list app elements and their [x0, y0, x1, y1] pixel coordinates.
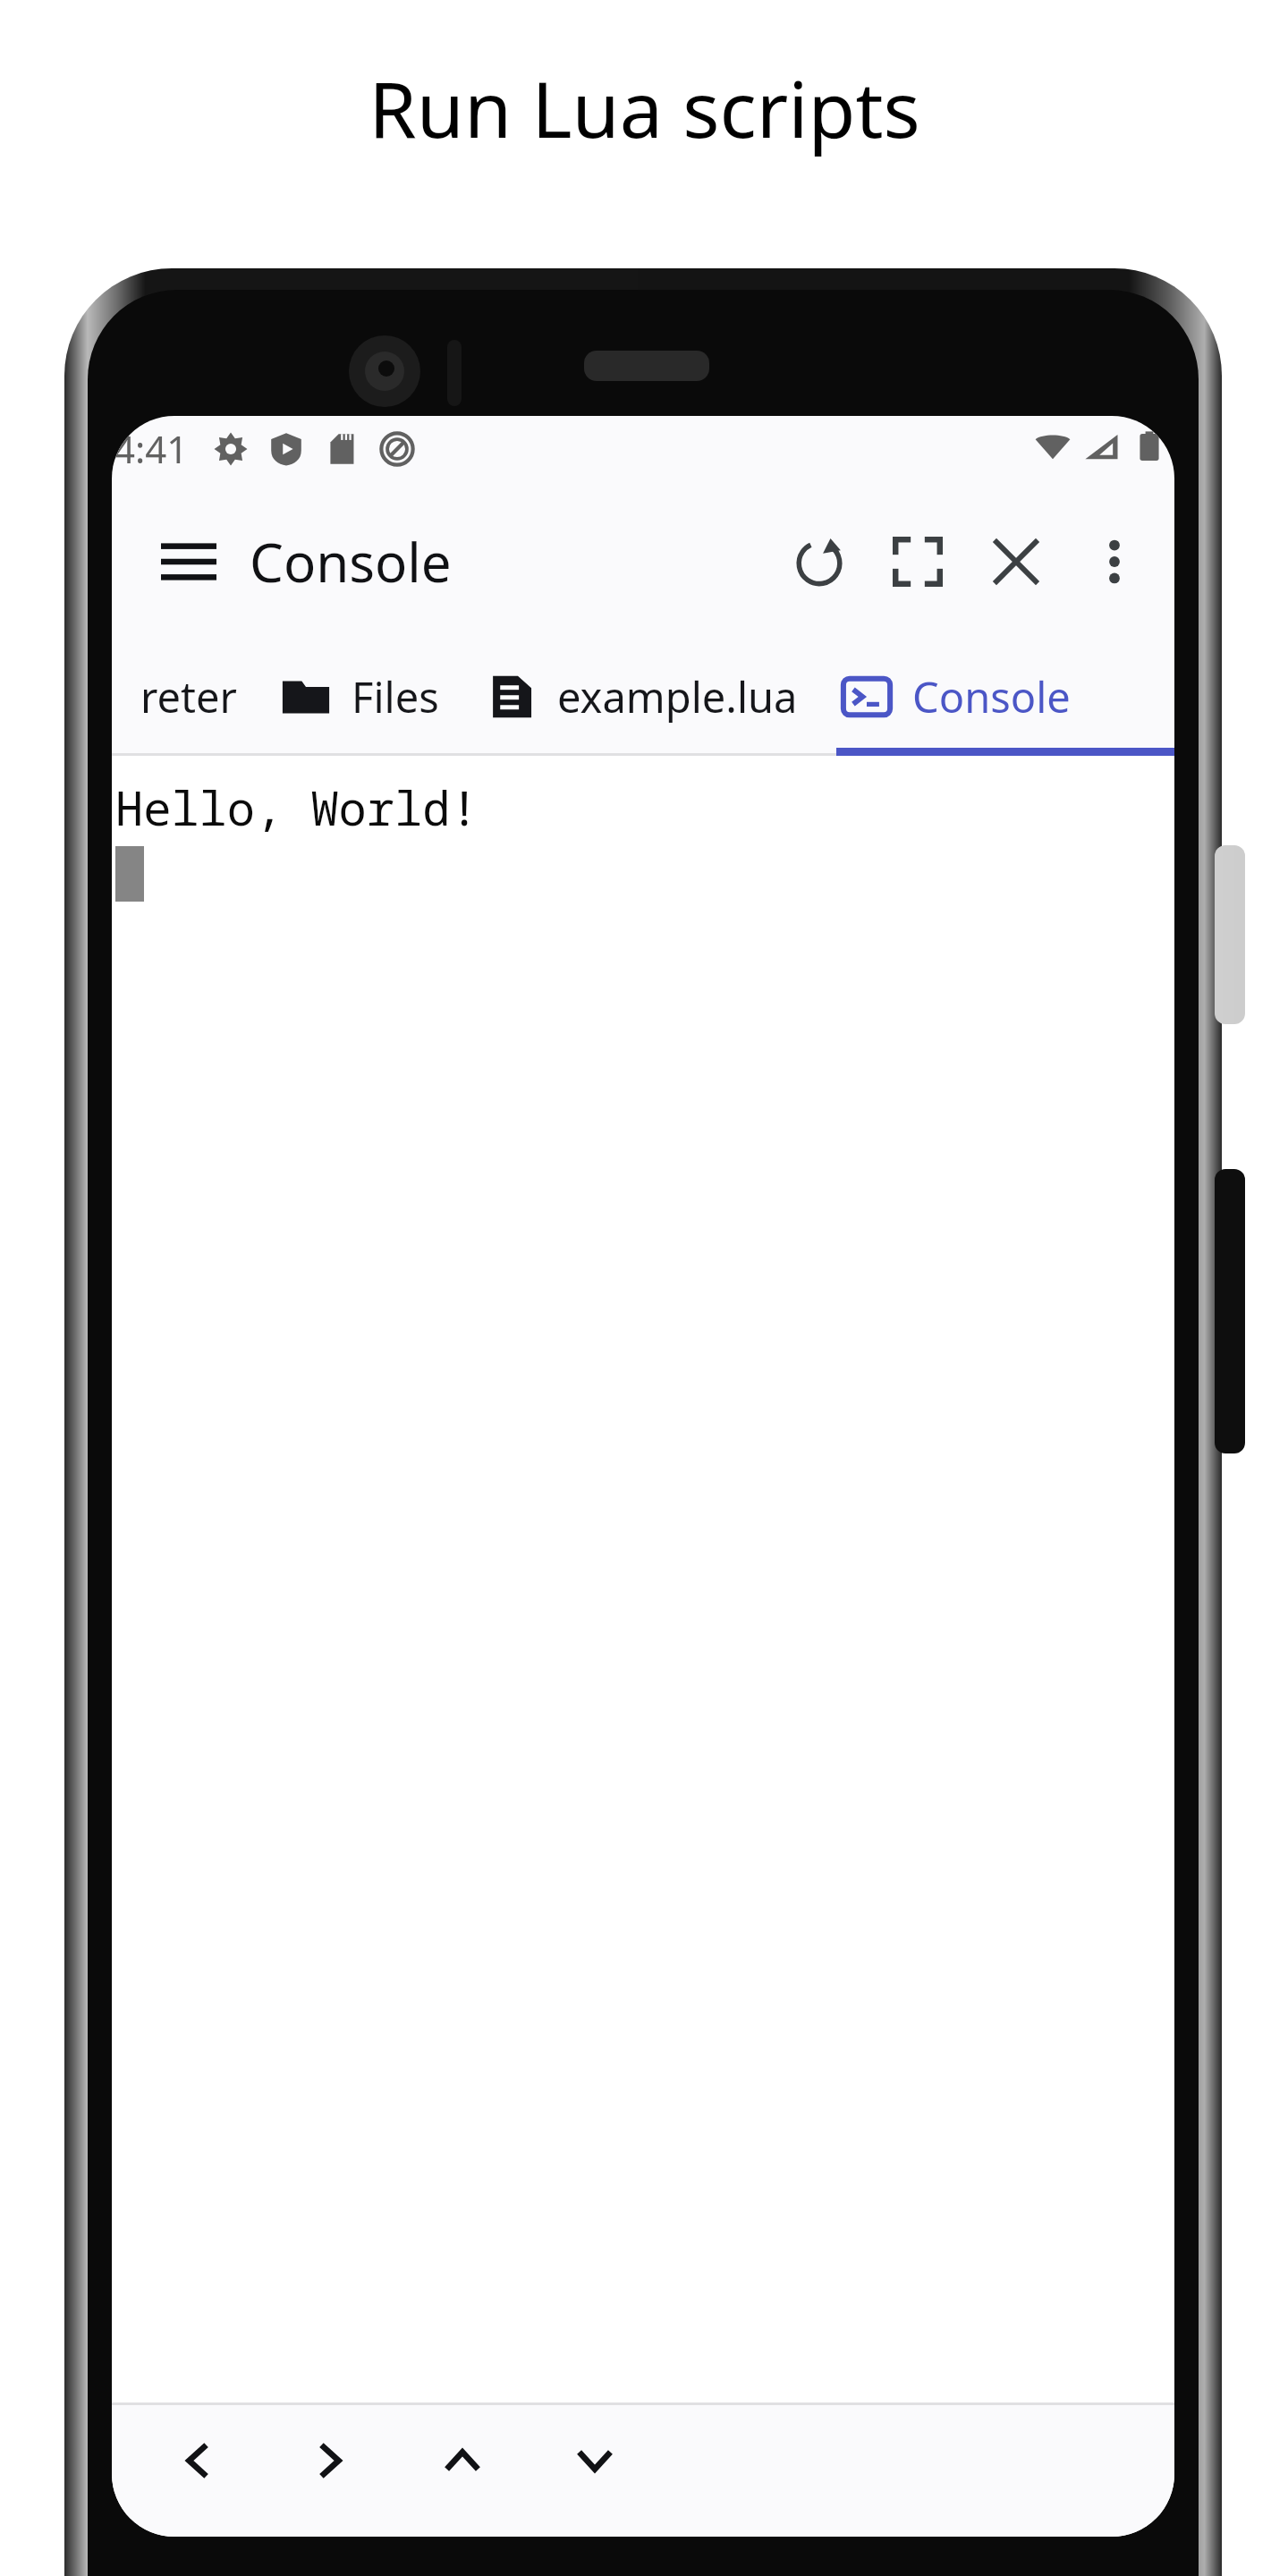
staticText: reter [140, 668, 237, 725]
button[interactable]: Console [841, 638, 1071, 756]
staticText: 14:41 [112, 423, 189, 474]
button[interactable]: Close [967, 513, 1065, 611]
staticText: example.lua [557, 668, 798, 725]
button[interactable]: Scroll up [396, 2407, 529, 2514]
button[interactable]: More options [1065, 513, 1164, 611]
button[interactable]: Refresh [770, 513, 869, 611]
button[interactable]: reter [112, 638, 237, 756]
staticText: Hello, World! [115, 775, 479, 839]
staticText: Console [912, 668, 1071, 725]
staticText: Run Lua scripts [369, 55, 920, 160]
button[interactable]: Fullscreen [869, 513, 967, 611]
button[interactable]: Previous [131, 2407, 264, 2514]
button[interactable]: example.lua [486, 638, 798, 756]
button[interactable]: Scroll down [529, 2407, 661, 2514]
staticText: Console [250, 525, 452, 598]
staticText: Files [352, 668, 439, 725]
button[interactable]: Files [280, 638, 439, 756]
button[interactable]: Next [264, 2407, 396, 2514]
button[interactable]: Open navigation menu [148, 521, 230, 603]
button[interactable]: Hello, World! [112, 756, 1174, 2402]
